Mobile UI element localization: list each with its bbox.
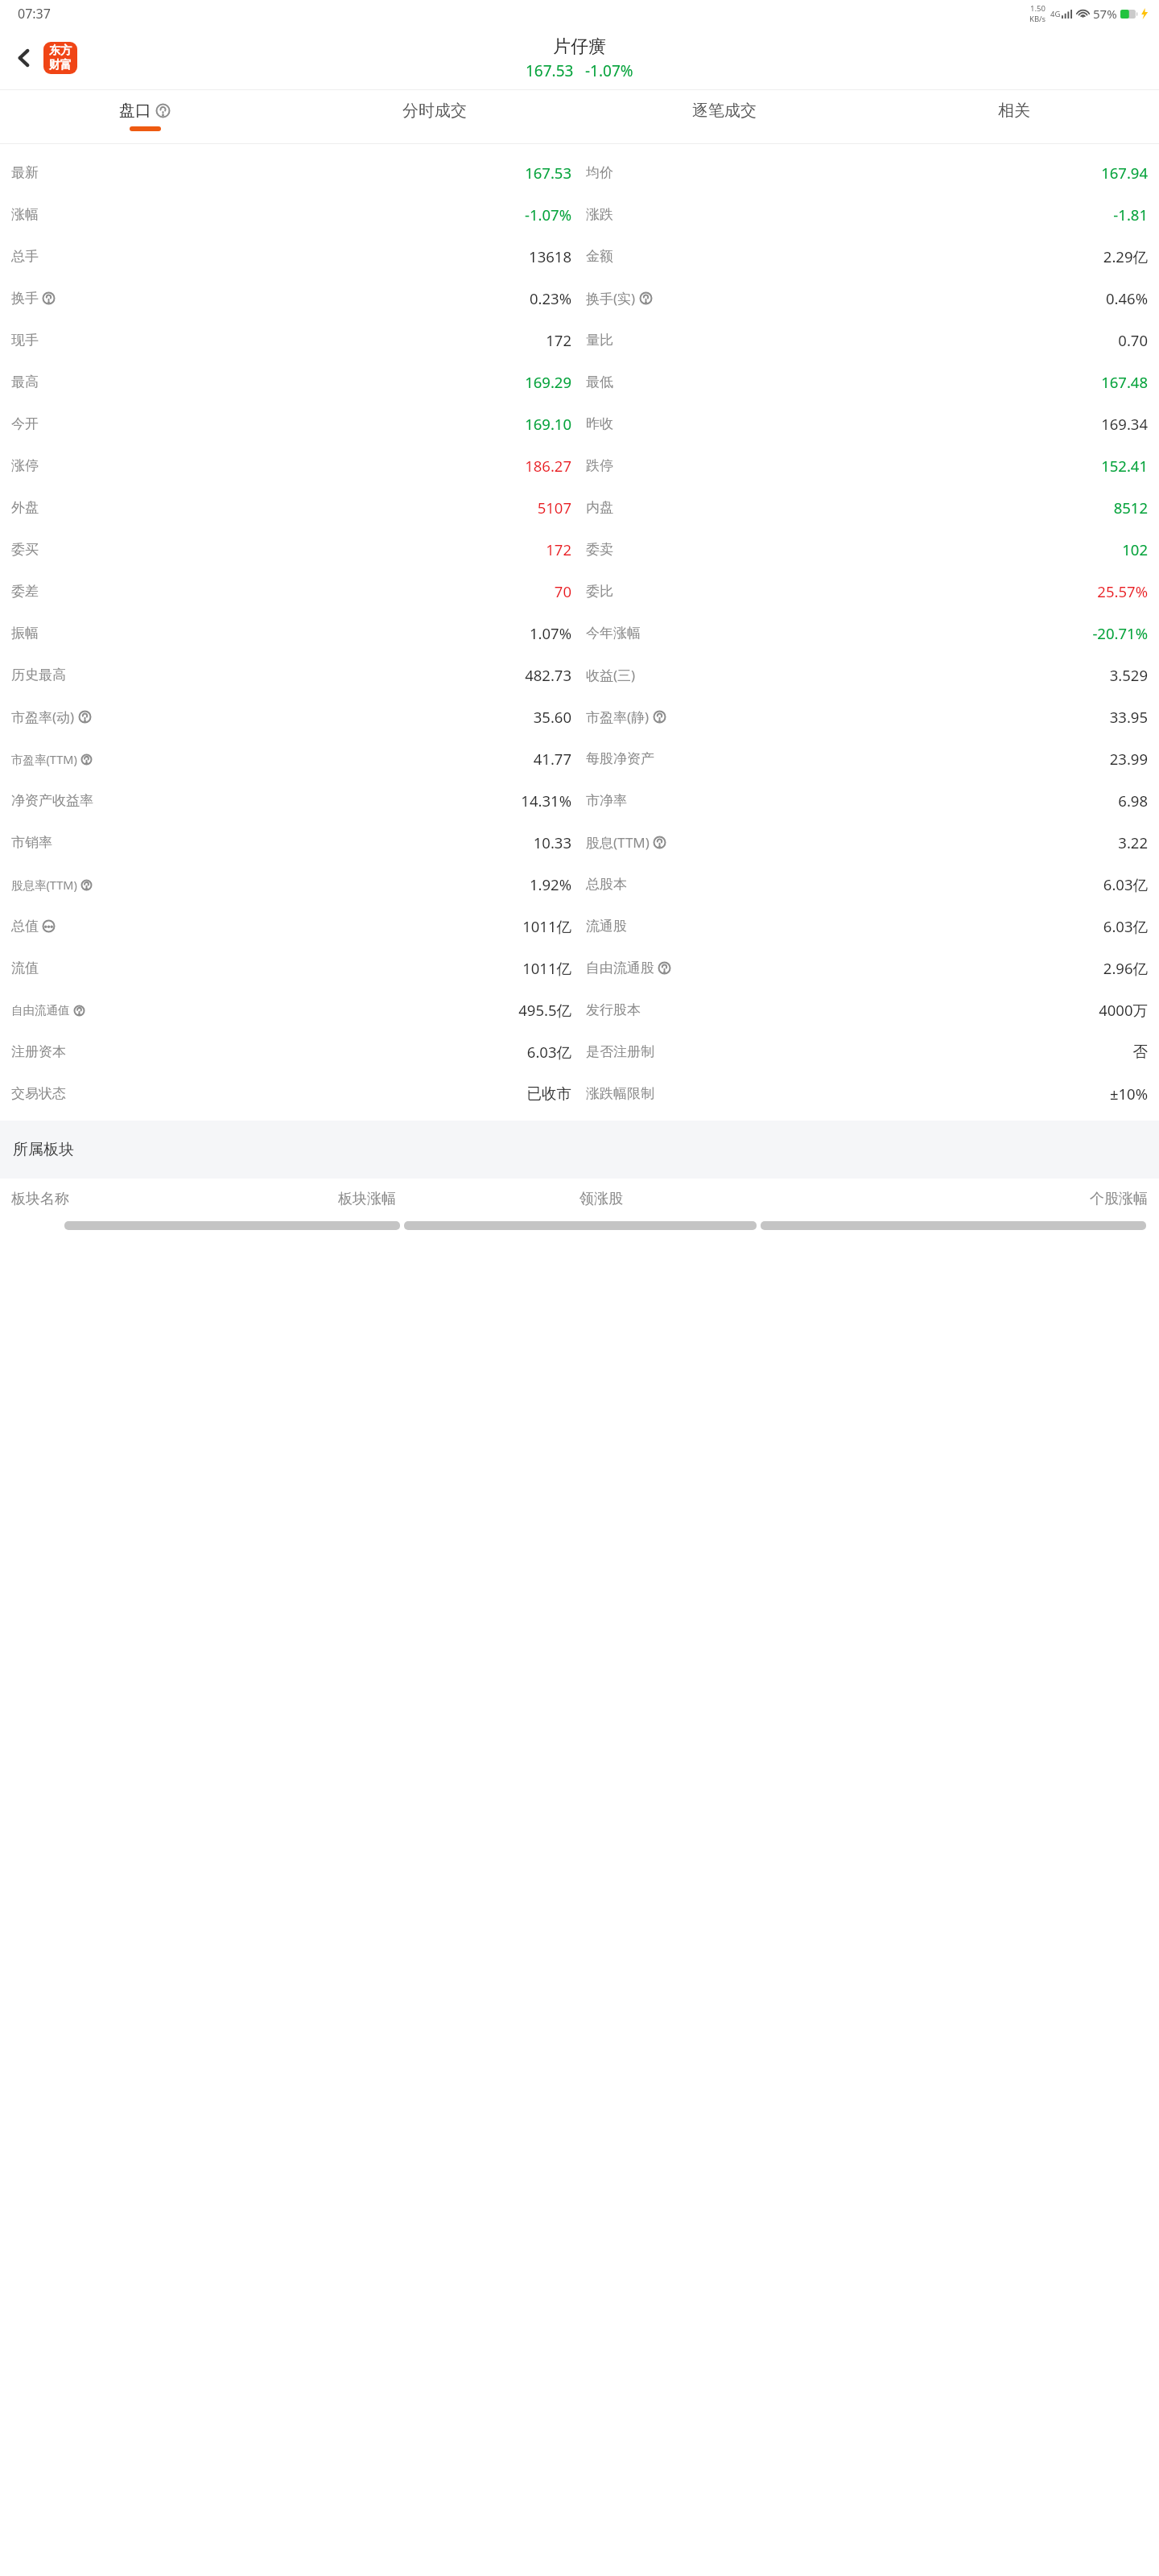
staticText: 是否注册制 <box>586 1043 654 1060</box>
button[interactable]: 盘口 <box>0 90 290 144</box>
staticText: 482.73 <box>525 665 571 685</box>
staticText: 4G <box>1050 9 1061 19</box>
button[interactable]: 今开 <box>0 402 1159 444</box>
staticText: 振幅 <box>11 625 39 642</box>
staticText: 8512 <box>1113 497 1148 518</box>
staticText: 盘口 <box>119 101 151 121</box>
button[interactable]: 净资产收益率 <box>0 779 1159 821</box>
button[interactable]: 换手 <box>0 277 1159 319</box>
staticText: 市盈率(动) <box>11 708 75 726</box>
staticText: 102 <box>1122 539 1148 559</box>
staticText: 涨幅 <box>11 206 39 223</box>
staticText: 委差 <box>11 583 39 600</box>
staticText: 交易状态 <box>11 1085 66 1102</box>
staticText: 167.48 <box>1101 372 1148 392</box>
button[interactable]: 涨停 <box>0 444 1159 486</box>
staticText: 换手 <box>11 290 39 307</box>
button[interactable]: 委差 <box>0 570 1159 612</box>
button[interactable]: 自由流通值 <box>0 989 1159 1030</box>
staticText: 25.57% <box>1097 581 1148 601</box>
staticText: 历史最高 <box>11 667 66 683</box>
staticText: 股息率(TTM) <box>11 877 77 893</box>
button[interactable]: 相关 <box>869 90 1159 144</box>
staticText: 逐笔成交 <box>692 101 757 121</box>
staticText: 流值 <box>11 960 39 976</box>
staticText: 流通股 <box>586 918 627 935</box>
staticText: 186.27 <box>525 456 571 476</box>
staticText: 市净率 <box>586 792 627 809</box>
staticText: -1.07% <box>524 204 571 225</box>
staticText: 量比 <box>586 332 613 349</box>
staticText: 1.07% <box>529 623 571 643</box>
button[interactable]: 历史最高 <box>0 654 1159 696</box>
button[interactable]: 外盘 <box>0 486 1159 528</box>
button[interactable]: 流值 <box>0 947 1159 989</box>
button[interactable]: 市销率 <box>0 821 1159 863</box>
staticText: 0.46% <box>1105 288 1148 308</box>
staticText: 板块名称 <box>11 1190 338 1208</box>
staticText: 07:37 <box>18 5 51 23</box>
button[interactable]: 涨幅 <box>0 193 1159 235</box>
staticText: 相关 <box>998 101 1030 121</box>
staticText: 172 <box>546 330 571 350</box>
staticText: 自由流通股 <box>586 960 654 976</box>
staticText: KB/s <box>1029 14 1046 24</box>
staticText: 6.03亿 <box>526 1042 571 1062</box>
staticText: 169.34 <box>1101 414 1148 434</box>
button[interactable]: 总值 <box>0 905 1159 947</box>
staticText: 委买 <box>11 541 39 558</box>
staticText: 自由流通值 <box>11 1003 70 1018</box>
staticText: 6.98 <box>1118 791 1148 811</box>
staticText: 每股净资产 <box>586 750 654 767</box>
button[interactable]: 最新 <box>0 151 1159 193</box>
staticText: 均价 <box>586 164 613 181</box>
staticText: 5107 <box>537 497 571 518</box>
staticText: 跌停 <box>586 457 613 474</box>
staticText: 1.50 <box>1030 3 1046 14</box>
staticText: -1.07% <box>585 60 633 81</box>
button[interactable]: 市盈率(TTM) <box>0 737 1159 779</box>
staticText: 发行股本 <box>586 1001 641 1018</box>
staticText: -20.71% <box>1092 623 1148 643</box>
staticText: 1011亿 <box>522 958 571 978</box>
staticText: 1011亿 <box>522 916 571 936</box>
button[interactable]: 分时成交 <box>290 90 579 144</box>
staticText: 换手(实) <box>586 289 636 308</box>
staticText: 市盈率(静) <box>586 708 650 726</box>
staticText: 今年涨幅 <box>586 625 641 642</box>
button[interactable]: 注册资本 <box>0 1030 1159 1072</box>
button[interactable]: 交易状态 <box>0 1072 1159 1114</box>
staticText: 片仔癀 <box>553 35 606 58</box>
staticText: 分时成交 <box>402 101 467 121</box>
staticText: 现手 <box>11 332 39 349</box>
staticText: 0.23% <box>529 288 571 308</box>
staticText: 已收市 <box>526 1084 571 1103</box>
staticText: 2.29亿 <box>1103 246 1148 266</box>
button[interactable]: 市盈率(动) <box>0 696 1159 737</box>
button[interactable]: 逐笔成交 <box>579 90 869 144</box>
staticText: 13618 <box>529 246 571 266</box>
staticText: 6.03亿 <box>1103 874 1148 894</box>
button[interactable]: 总手 <box>0 235 1159 277</box>
staticText: 净资产收益率 <box>11 792 93 809</box>
staticText: 市销率 <box>11 834 52 851</box>
staticText: 152.41 <box>1101 456 1148 476</box>
button[interactable]: 股息率(TTM) <box>0 863 1159 905</box>
button[interactable]: East Money <box>43 42 77 74</box>
button[interactable]: 现手 <box>0 319 1159 361</box>
staticText: 167.53 <box>525 163 571 183</box>
button[interactable]: 最高 <box>0 361 1159 402</box>
staticText: 个股涨幅 <box>892 1190 1148 1208</box>
staticText: 委比 <box>586 583 613 600</box>
staticText: 3.529 <box>1109 665 1148 685</box>
staticText: 167.53 <box>526 60 574 81</box>
staticText: -1.81 <box>1113 204 1148 225</box>
staticText: 33.95 <box>1109 707 1148 727</box>
button[interactable]: 委买 <box>0 528 1159 570</box>
button[interactable]: 振幅 <box>0 612 1159 654</box>
staticText: 市盈率(TTM) <box>11 751 77 767</box>
staticText: 最新 <box>11 164 39 181</box>
staticText: 收益(三) <box>586 666 636 684</box>
button[interactable]: Back <box>5 39 43 77</box>
staticText: 23.99 <box>1109 749 1148 769</box>
